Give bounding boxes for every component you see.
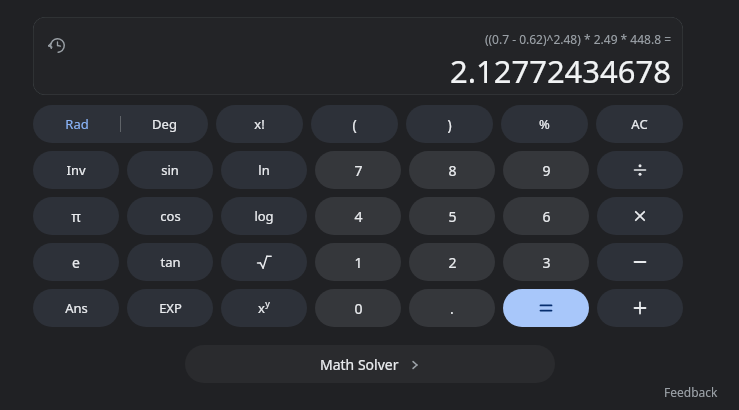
button[interactable]: cos (127, 197, 213, 235)
button[interactable]: History (43, 31, 71, 59)
staticText: ln (258, 161, 270, 179)
button[interactable]: 8 (409, 151, 495, 189)
staticText: log (254, 207, 274, 225)
button[interactable]: 4 (315, 197, 401, 235)
button[interactable]: Ans (33, 289, 119, 327)
staticText: Ans (65, 299, 88, 317)
button[interactable] (597, 289, 683, 327)
staticText: % (539, 115, 550, 133)
button[interactable]: % (501, 105, 588, 143)
staticText: Rad (65, 115, 89, 133)
button[interactable] (503, 289, 589, 327)
staticText: sin (161, 161, 179, 179)
staticText: . (450, 299, 454, 318)
button[interactable] (597, 151, 683, 189)
button[interactable]: AC (596, 105, 683, 143)
staticText: 6 (542, 207, 551, 226)
button[interactable]: tan (127, 243, 213, 281)
staticText: cos (160, 207, 181, 225)
staticText: 1 (354, 253, 363, 272)
staticText: EXP (159, 299, 182, 317)
staticText: e (72, 253, 80, 272)
button[interactable]: ) (406, 105, 493, 143)
button[interactable]: e (33, 243, 119, 281)
staticText: Math Solver (320, 355, 399, 374)
button[interactable] (221, 243, 307, 281)
staticText: 7 (354, 161, 363, 180)
button[interactable]: x (221, 289, 307, 327)
button[interactable]: 1 (315, 243, 401, 281)
button[interactable]: ( (311, 105, 398, 143)
staticText: 9 (542, 161, 551, 180)
staticText: 2.12772434678 (449, 50, 671, 92)
button[interactable]: Inv (33, 151, 119, 189)
button[interactable]: EXP (127, 289, 213, 327)
button[interactable]: 9 (503, 151, 589, 189)
staticText: Inv (66, 161, 86, 179)
button[interactable]: 0 (315, 289, 401, 327)
staticText: 0 (354, 299, 363, 318)
button[interactable]: 5 (409, 197, 495, 235)
staticText: 3 (542, 253, 551, 272)
staticText: AC (631, 115, 648, 133)
button[interactable]: log (221, 197, 307, 235)
staticText: Feedback (664, 384, 718, 400)
staticText: y (265, 297, 270, 309)
button[interactable] (597, 243, 683, 281)
staticText: 2 (448, 253, 457, 272)
button[interactable] (597, 197, 683, 235)
staticText: x! (254, 115, 265, 133)
button[interactable]: 7 (315, 151, 401, 189)
button[interactable]: 3 (503, 243, 589, 281)
button[interactable]: π (33, 197, 119, 235)
button[interactable]: Feedback (660, 382, 722, 402)
staticText: 5 (448, 207, 457, 226)
staticText: Deg (152, 115, 177, 133)
button[interactable]: Math Solver (185, 345, 555, 383)
staticText: 8 (448, 161, 457, 180)
staticText: x (258, 299, 265, 317)
button[interactable]: Rad (33, 105, 208, 143)
button[interactable]: ln (221, 151, 307, 189)
button[interactable]: 2 (409, 243, 495, 281)
staticText: π (71, 207, 81, 226)
staticText: ) (447, 115, 452, 134)
staticText: 4 (354, 207, 363, 226)
button[interactable]: . (409, 289, 495, 327)
button[interactable]: 6 (503, 197, 589, 235)
staticText: tan (160, 253, 181, 271)
staticText: ( (352, 115, 357, 134)
button[interactable]: sin (127, 151, 213, 189)
staticText: ((0.7 - 0.62)^2.48) * 2.49 * 448.8 = (484, 31, 671, 47)
button[interactable]: x! (216, 105, 303, 143)
